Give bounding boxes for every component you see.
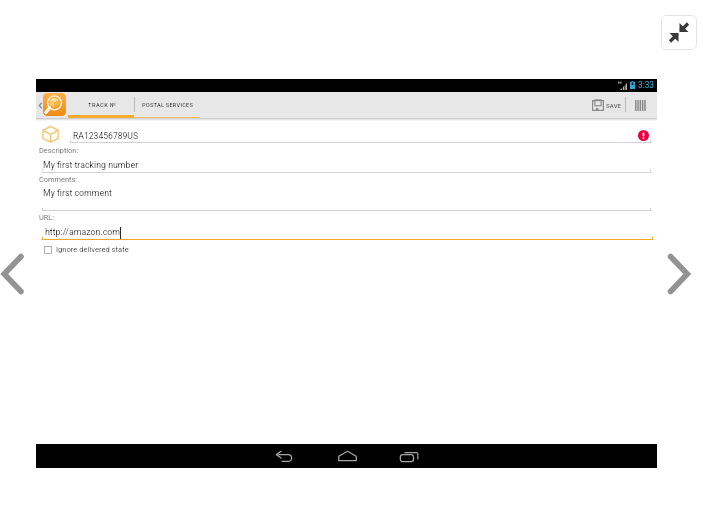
button[interactable]: Navigate up (37, 98, 44, 112)
staticText: POSTAL SERVICES (142, 102, 194, 109)
button[interactable]: Next screenshot (666, 251, 694, 297)
button[interactable]: Home (338, 451, 357, 461)
button[interactable]: SAVE (591, 92, 623, 119)
staticText: SAVE (606, 102, 622, 109)
staticText: Comments: (39, 175, 78, 184)
button[interactable]: Ignore delivered state (44, 244, 129, 255)
button[interactable]: Back (276, 451, 293, 462)
button[interactable]: Application icon (43, 93, 66, 116)
button[interactable]: Recent apps (400, 451, 418, 462)
staticText: http://amazon.com (45, 227, 121, 237)
button[interactable]: Scan barcode (629, 92, 651, 119)
staticText: URL: (39, 213, 55, 222)
button[interactable]: TRACK № (69, 92, 135, 119)
staticText: Description: (39, 146, 79, 155)
staticText: My first comment (43, 188, 112, 198)
staticText: My first tracking number (43, 160, 139, 170)
staticText: RA123456789US (73, 131, 139, 141)
button[interactable]: Previous screenshot (0, 251, 28, 297)
button[interactable]: POSTAL SERVICES (133, 92, 203, 119)
staticText: 3:33 (638, 80, 654, 90)
button[interactable]: Exit fullscreen (661, 15, 697, 50)
staticText: Ignore delivered state (56, 245, 129, 254)
staticText: TRACK № (88, 102, 117, 109)
